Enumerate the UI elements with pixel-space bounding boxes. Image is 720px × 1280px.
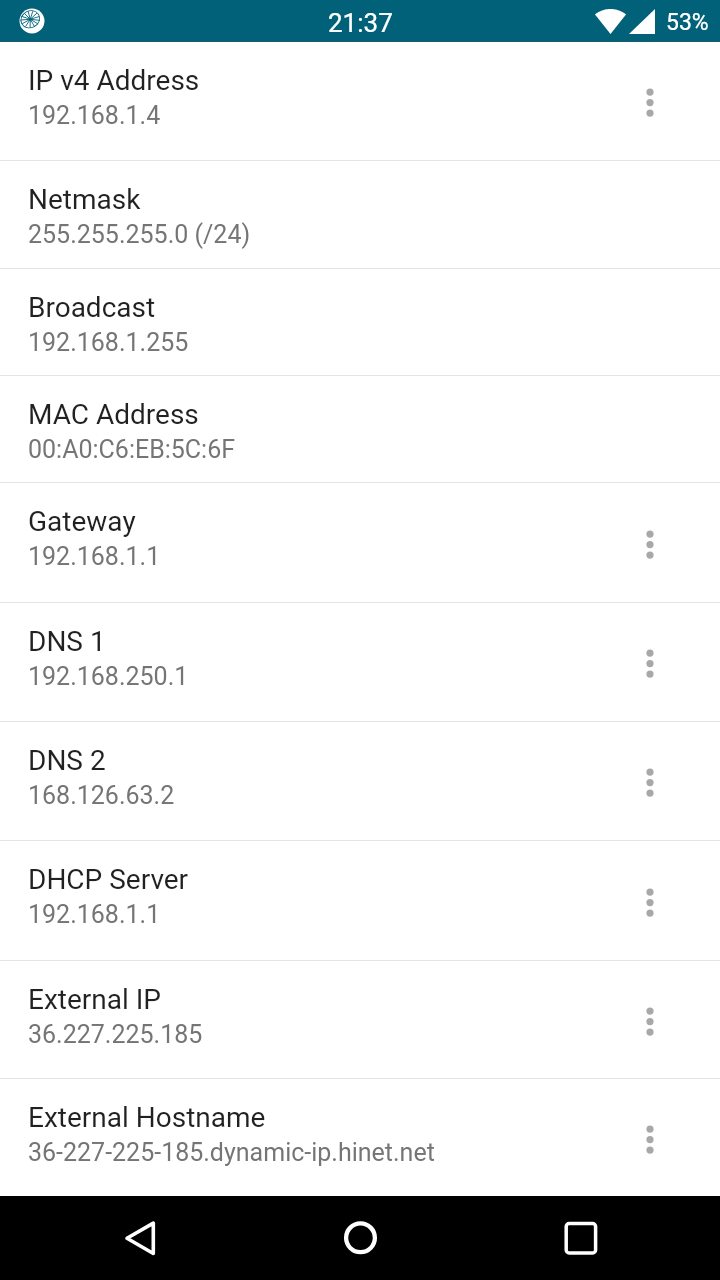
button[interactable]: DNS 2 [0,722,720,840]
staticText: Netmask [28,183,141,216]
staticText: 192.168.1.1 [28,542,161,571]
staticText: Gateway [28,505,136,538]
button[interactable]: IP v4 Address [0,42,720,160]
staticText: IP v4 Address [28,64,200,97]
button[interactable]: More options [580,722,720,840]
button[interactable]: More options [580,841,720,960]
staticText: 21:37 [328,8,393,38]
staticText: External Hostname [28,1101,266,1134]
button[interactable]: More options [580,1079,720,1196]
button[interactable]: Recent apps [550,1205,610,1280]
staticText: 192.168.1.4 [28,101,161,130]
button[interactable]: External IP [0,961,720,1078]
staticText: DHCP Server [28,863,189,896]
button[interactable]: More options [580,483,720,602]
staticText: 00:A0:C6:EB:5C:6F [28,435,236,464]
button[interactable]: MAC Address [0,376,720,482]
button[interactable]: DNS 1 [0,603,720,721]
button[interactable]: More options [580,961,720,1078]
staticText: MAC Address [28,398,199,431]
staticText: 36.227.225.185 [28,1020,203,1049]
staticText: Broadcast [28,291,156,324]
staticText: 255.255.255.0 (/24) [28,220,251,249]
other: Notification [19,8,44,33]
staticText: 36-227-225-185.dynamic-ip.hinet.net [28,1138,435,1167]
staticText: 168.126.63.2 [28,781,175,810]
button[interactable]: Gateway [0,483,720,602]
staticText: 192.168.1.255 [28,328,189,357]
button[interactable]: Back [110,1206,170,1280]
staticText: DNS 2 [28,744,106,777]
staticText: 192.168.1.1 [28,900,161,929]
button[interactable]: Netmask [0,161,720,268]
staticText: DNS 1 [28,625,106,658]
staticText: 192.168.250.1 [28,662,189,691]
button[interactable]: More options [580,603,720,721]
staticText: 53% [666,9,709,36]
staticText: External IP [28,983,162,1016]
button[interactable]: External Hostname [0,1079,720,1196]
button[interactable]: Broadcast [0,269,720,375]
button[interactable]: DHCP Server [0,841,720,960]
button[interactable]: More options [580,42,720,160]
button[interactable]: Home [330,1204,390,1280]
